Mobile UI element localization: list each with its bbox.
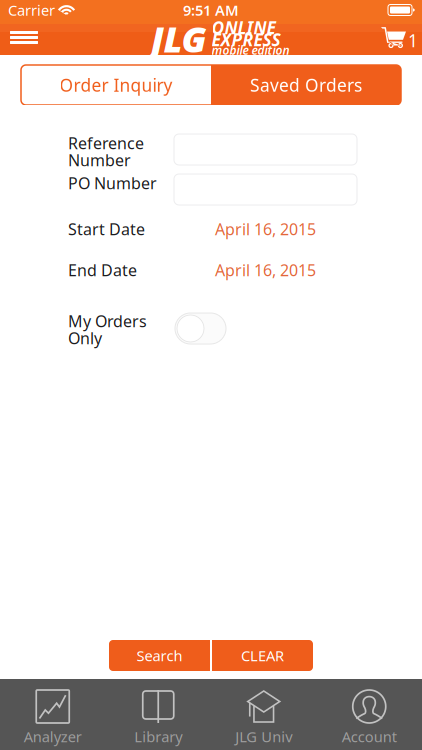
button[interactable]: Order Inquiry <box>21 65 211 105</box>
button[interactable]: Menu <box>0 20 48 55</box>
staticText: JLG Univ <box>235 727 292 746</box>
staticText: Search <box>136 646 182 665</box>
button[interactable]: Analyzer <box>0 679 105 750</box>
staticText: Library <box>134 727 182 746</box>
staticText: Account <box>342 727 397 746</box>
staticText: CLEAR <box>241 646 284 665</box>
staticText: 9:51 AM <box>183 0 239 20</box>
button[interactable]: Library <box>105 679 211 750</box>
staticText: mobile edition <box>211 42 289 58</box>
staticText: Only <box>68 327 102 349</box>
staticText: ONLINE <box>211 16 275 39</box>
staticText: Reference <box>68 132 144 154</box>
staticText: End Date <box>68 259 137 281</box>
staticText: April 16, 2015 <box>215 218 316 240</box>
button[interactable]: CLEAR <box>212 640 313 671</box>
staticText: 1 <box>408 29 418 52</box>
button[interactable]: JLG Univ <box>211 679 316 750</box>
staticText: Saved Orders <box>250 73 362 96</box>
staticText: Carrier <box>8 0 55 20</box>
staticText: JLG <box>150 15 206 62</box>
button[interactable]: Search <box>109 640 210 671</box>
staticText: PO Number <box>68 172 157 194</box>
staticText: Order Inquiry <box>59 73 172 96</box>
staticText: Start Date <box>68 218 145 240</box>
button[interactable]: My Orders Only <box>175 313 226 344</box>
staticText: Number <box>68 149 131 171</box>
staticText: April 16, 2015 <box>215 259 316 281</box>
staticText: Analyzer <box>24 727 82 746</box>
button[interactable]: Cart, 1 item <box>377 20 422 55</box>
button[interactable]: Start Date <box>68 218 357 240</box>
button[interactable]: End Date <box>68 259 357 281</box>
staticText: EXPRESS <box>211 28 280 51</box>
button[interactable]: Saved Orders <box>211 65 401 105</box>
button[interactable]: Account <box>316 679 422 750</box>
staticText: My Orders <box>68 310 147 332</box>
